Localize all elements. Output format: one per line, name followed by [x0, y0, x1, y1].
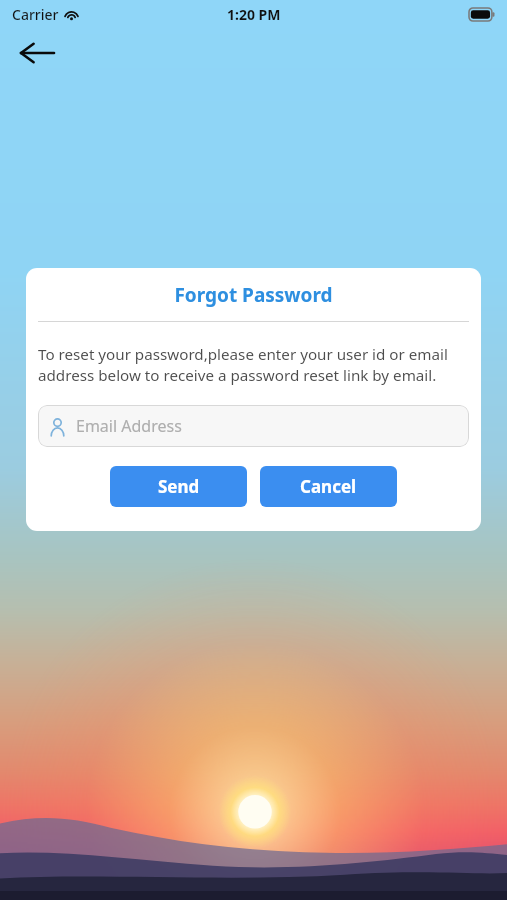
staticText: Carrier	[12, 5, 59, 24]
staticText: Forgot Password	[26, 282, 481, 308]
button[interactable]: Email Address	[38, 405, 469, 447]
staticText: 1:20 PM	[227, 5, 281, 24]
staticText: Send	[158, 475, 200, 498]
button[interactable]: Send	[110, 466, 247, 507]
button[interactable]: Cancel	[260, 466, 397, 507]
staticText: Cancel	[300, 475, 357, 498]
staticText: To reset your password,please enter your…	[38, 344, 469, 386]
staticText: Email Address	[76, 415, 182, 437]
button[interactable]: Back	[14, 33, 60, 73]
